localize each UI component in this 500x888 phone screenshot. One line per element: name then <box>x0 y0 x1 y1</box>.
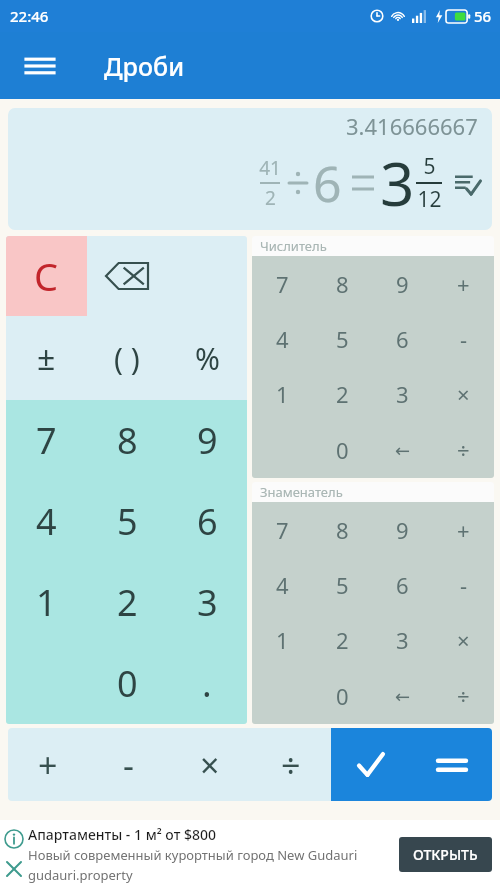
button[interactable]: . <box>167 643 247 724</box>
button[interactable]: Backspace <box>87 236 167 316</box>
staticText: 3 <box>396 379 409 409</box>
staticText: % <box>195 338 220 379</box>
button[interactable]: 3 <box>372 612 433 668</box>
button[interactable]: Confirm <box>331 728 411 801</box>
button[interactable]: 9 <box>167 400 247 481</box>
staticText: 5 <box>336 570 349 600</box>
button[interactable]: History <box>450 166 484 200</box>
staticText: 2 <box>117 578 138 627</box>
button[interactable]: 0 <box>87 643 167 724</box>
button[interactable]: ( ) <box>87 316 167 400</box>
button[interactable]: 6 <box>167 481 247 562</box>
button[interactable]: ÷ <box>433 668 494 724</box>
staticText: ( ) <box>114 338 140 379</box>
button[interactable]: 5 <box>87 481 167 562</box>
staticText: 8 <box>117 416 138 465</box>
button[interactable]: 0 <box>312 422 372 478</box>
button[interactable]: 2 <box>87 562 167 643</box>
button[interactable]: 3 <box>167 562 247 643</box>
button[interactable]: Open navigation menu <box>14 40 66 92</box>
button[interactable]: 1 <box>6 562 87 643</box>
staticText: ÷ <box>457 435 470 465</box>
staticText: 3 <box>396 625 409 655</box>
button[interactable]: 8 <box>312 502 372 557</box>
staticText: 6 <box>313 149 342 217</box>
button[interactable]: 6 <box>372 311 433 366</box>
button[interactable]: 5 <box>312 557 372 612</box>
staticText: × <box>457 379 470 409</box>
button[interactable]: - <box>433 311 494 366</box>
staticText: gudauri.property <box>28 866 133 884</box>
staticText: 5 <box>423 152 436 181</box>
button[interactable]: ← <box>372 668 433 724</box>
button[interactable]: 4 <box>252 311 312 366</box>
staticText: 2 <box>336 625 349 655</box>
button[interactable]: 5 <box>312 311 372 366</box>
button[interactable]: × <box>433 612 494 668</box>
staticText: + <box>457 515 470 545</box>
button[interactable]: 3 <box>372 366 433 422</box>
staticText: 5 <box>336 324 349 354</box>
button[interactable]: 9 <box>372 502 433 557</box>
staticText: 1 <box>276 625 289 655</box>
button[interactable]: ← <box>372 422 433 478</box>
staticText: + <box>38 742 58 788</box>
staticText: + <box>457 269 470 299</box>
staticText: - <box>460 324 468 354</box>
staticText: 1 <box>276 379 289 409</box>
button[interactable]: 7 <box>252 502 312 557</box>
staticText: - <box>123 742 134 788</box>
button[interactable]: + <box>433 502 494 557</box>
staticText: 41 <box>259 155 281 181</box>
staticText: 1 <box>36 578 57 627</box>
staticText: . <box>202 659 212 708</box>
button[interactable]: ÷ <box>433 422 494 478</box>
button[interactable]: ± <box>6 316 87 400</box>
button[interactable]: 2 <box>312 366 372 422</box>
button[interactable]: Ad info <box>4 829 24 849</box>
staticText: Апартаменты - 1 м² от $800 <box>28 825 216 844</box>
button[interactable]: C <box>6 236 87 316</box>
staticText: 0 <box>117 659 138 708</box>
staticText: - <box>460 570 468 600</box>
button[interactable]: - <box>88 728 169 801</box>
button[interactable]: 4 <box>6 481 87 562</box>
button[interactable]: 8 <box>312 256 372 311</box>
button[interactable]: 8 <box>87 400 167 481</box>
button[interactable]: 3.416666667 <box>8 108 492 230</box>
staticText: 5 <box>117 497 138 546</box>
button[interactable]: Equals <box>411 728 492 801</box>
button[interactable]: 1 <box>252 612 312 668</box>
staticText: ÷ <box>281 742 301 788</box>
staticText: 6 <box>197 497 218 546</box>
staticText: 0 <box>336 435 349 465</box>
button[interactable]: + <box>433 256 494 311</box>
button[interactable]: 7 <box>252 256 312 311</box>
staticText: Числитель <box>260 237 327 255</box>
staticText: 6 <box>396 570 409 600</box>
button[interactable]: ÷ <box>250 728 331 801</box>
button[interactable]: Close ad <box>4 859 24 879</box>
button[interactable]: × <box>169 728 250 801</box>
button[interactable]: % <box>167 316 247 400</box>
button[interactable]: 6 <box>372 557 433 612</box>
staticText: 3 <box>197 578 218 627</box>
staticText: 2 <box>336 379 349 409</box>
button[interactable]: 0 <box>312 668 372 724</box>
staticText: 0 <box>336 681 349 711</box>
staticText: × <box>457 625 470 655</box>
button[interactable]: 9 <box>372 256 433 311</box>
staticText: C <box>34 250 59 302</box>
staticText: ÷ <box>457 681 470 711</box>
staticText: ← <box>395 440 411 461</box>
button[interactable]: ОТКРЫТЬ <box>413 845 478 864</box>
button[interactable]: - <box>433 557 494 612</box>
button[interactable]: 2 <box>312 612 372 668</box>
staticText: 4 <box>276 324 289 354</box>
button[interactable]: × <box>433 366 494 422</box>
button[interactable]: 4 <box>252 557 312 612</box>
button[interactable]: + <box>8 728 88 801</box>
button[interactable]: 1 <box>252 366 312 422</box>
staticText: 8 <box>336 269 349 299</box>
button[interactable]: 7 <box>6 400 87 481</box>
